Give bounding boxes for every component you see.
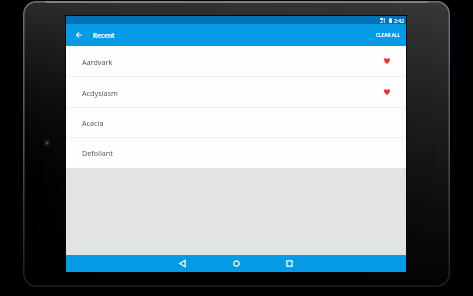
- staticText: 2:42: [394, 17, 405, 24]
- button[interactable]: Favorite: [380, 86, 393, 99]
- button[interactable]: Favorite: [380, 55, 393, 68]
- button[interactable]: Back: [174, 255, 191, 272]
- staticText: Recent: [93, 31, 115, 40]
- staticText: Acdysiasm: [82, 88, 118, 98]
- button[interactable]: Home: [228, 255, 245, 272]
- button[interactable]: Acacia: [66, 108, 406, 138]
- staticText: Defoliant: [82, 148, 113, 158]
- button[interactable]: Acdysiasm: [66, 77, 406, 108]
- button[interactable]: CLEAR ALL: [370, 28, 406, 43]
- staticText: CLEAR ALL: [376, 32, 400, 39]
- button[interactable]: Navigate up: [70, 26, 88, 44]
- staticText: Aardvark: [82, 57, 113, 67]
- button[interactable]: Aardvark: [66, 46, 406, 77]
- button[interactable]: Defoliant: [66, 138, 406, 168]
- button[interactable]: Recents: [281, 255, 298, 272]
- staticText: Acacia: [82, 118, 104, 128]
